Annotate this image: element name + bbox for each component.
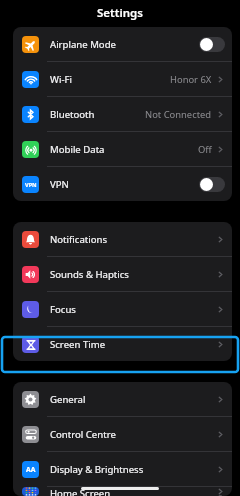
staticText: VPN xyxy=(25,181,37,189)
staticText: Focus xyxy=(50,303,76,316)
staticText: Honor 6X xyxy=(170,73,212,86)
button[interactable]: Toggle xyxy=(199,37,225,52)
button[interactable]: Toggle xyxy=(199,177,225,192)
button[interactable]: Control Centre xyxy=(13,417,232,452)
button[interactable]: Wi-Fi xyxy=(13,62,232,97)
staticText: Home Screen xyxy=(50,487,111,496)
button[interactable]: Sounds & Haptics xyxy=(13,257,232,292)
staticText: Control Centre xyxy=(50,428,116,441)
button[interactable]: General xyxy=(13,382,232,417)
staticText: Sounds & Haptics xyxy=(50,268,129,281)
staticText: AA xyxy=(26,465,36,474)
button[interactable]: AA xyxy=(13,452,232,487)
staticText: Settings xyxy=(97,5,143,21)
staticText: Screen Time xyxy=(50,338,106,351)
staticText: Display & Brightness xyxy=(50,463,144,476)
button[interactable]: Screen Time xyxy=(13,327,232,361)
staticText: General xyxy=(50,393,86,406)
staticText: Off xyxy=(198,143,212,156)
staticText: Notifications xyxy=(50,233,108,246)
button[interactable]: Focus xyxy=(13,292,232,327)
staticText: Mobile Data xyxy=(50,143,105,156)
button[interactable]: Notifications xyxy=(13,222,232,257)
staticText: Wi-Fi xyxy=(50,73,72,86)
button[interactable]: Airplane Mode xyxy=(13,27,232,62)
staticText: Airplane Mode xyxy=(50,38,116,51)
staticText: Not Connected xyxy=(145,108,212,121)
button[interactable]: Mobile Data xyxy=(13,132,232,167)
staticText: Bluetooth xyxy=(50,108,95,121)
button[interactable]: Bluetooth xyxy=(13,97,232,132)
button[interactable]: Home Screen xyxy=(13,487,232,496)
staticText: VPN xyxy=(50,178,69,191)
button[interactable]: VPN xyxy=(13,167,232,201)
